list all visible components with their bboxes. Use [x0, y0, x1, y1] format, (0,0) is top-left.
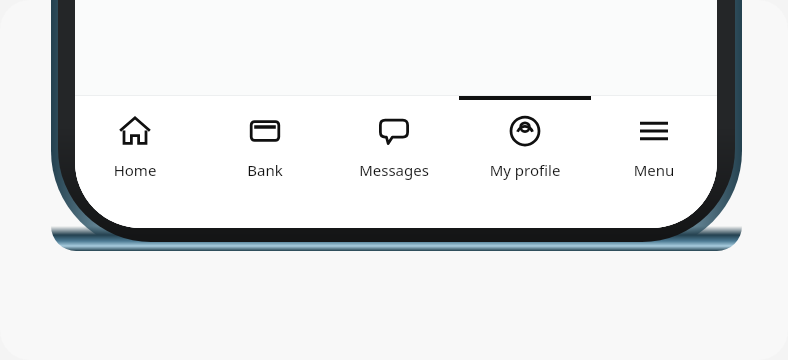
- staticText: Menu: [594, 160, 714, 180]
- button[interactable]: Home: [75, 101, 195, 213]
- staticText: Home: [75, 160, 195, 180]
- button[interactable]: Bank: [205, 101, 325, 213]
- other: Menu: [636, 113, 672, 149]
- staticText: Bank: [205, 160, 325, 180]
- other: Bank: [247, 113, 283, 149]
- other: Messages: [376, 113, 412, 149]
- other: Home: [117, 113, 153, 149]
- button[interactable]: Menu: [594, 101, 714, 213]
- button[interactable]: My profile: [465, 101, 585, 213]
- other: My profile: [507, 113, 543, 149]
- staticText: Messages: [334, 160, 454, 180]
- button[interactable]: Messages: [334, 101, 454, 213]
- staticText: My profile: [465, 160, 585, 180]
